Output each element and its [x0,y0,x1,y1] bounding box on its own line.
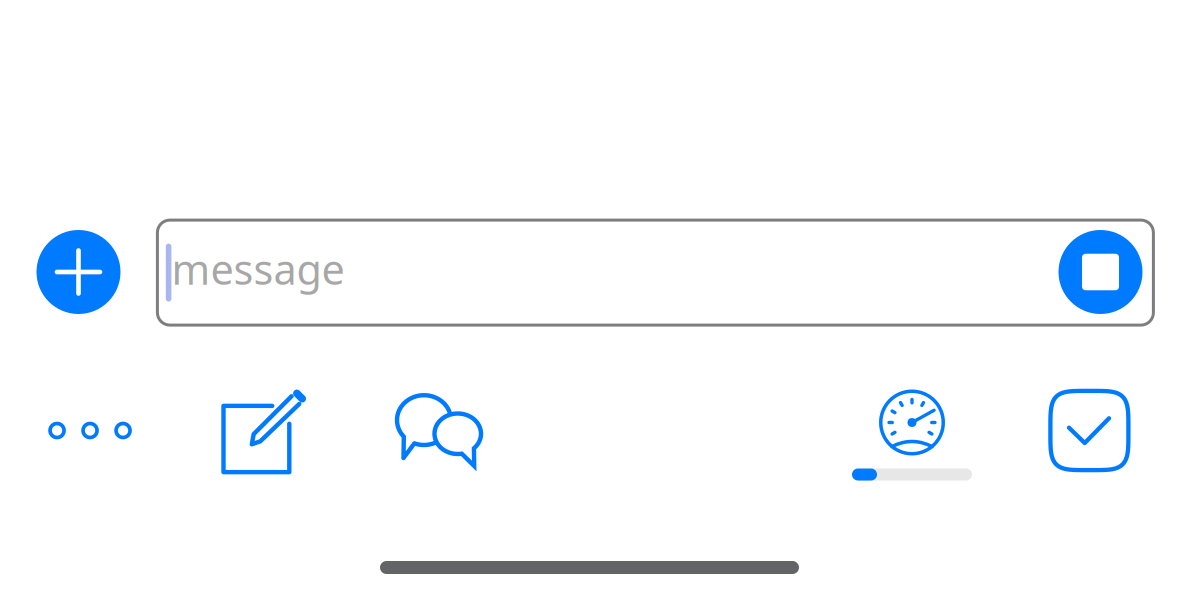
button[interactable]: New note [215,383,313,481]
staticText: message [171,241,344,296]
button[interactable]: More options [43,413,137,447]
button[interactable]: message [157,220,1153,325]
button[interactable]: Confirm [1047,388,1131,472]
button[interactable]: Add attachment [36,230,120,314]
button[interactable]: Stop [1058,230,1142,314]
button[interactable]: Conversations [391,386,491,476]
button[interactable]: Usage [847,388,977,480]
